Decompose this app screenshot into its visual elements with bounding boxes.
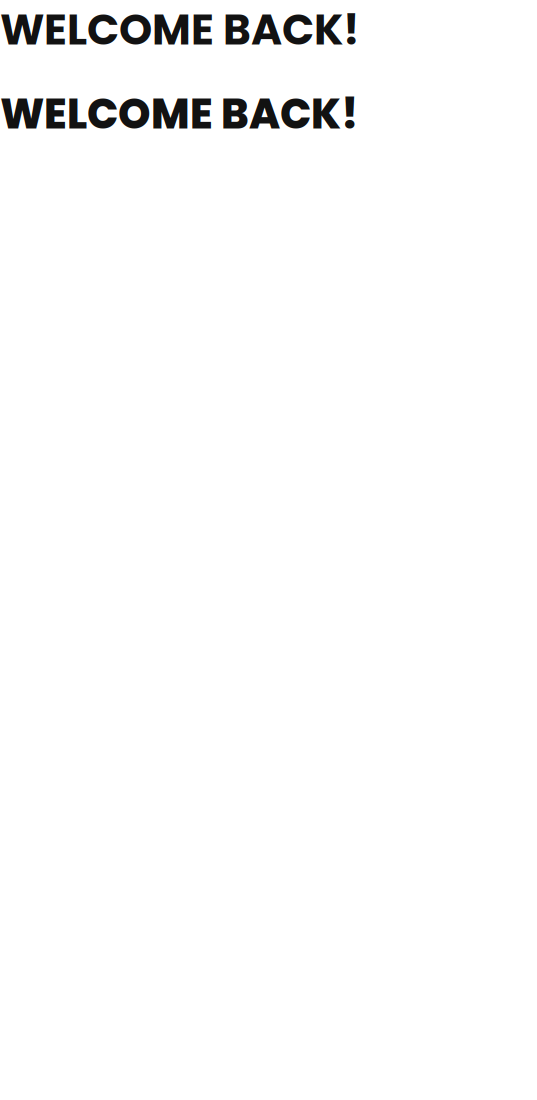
staticText: WELCOME BACK! bbox=[0, 85, 358, 143]
staticText: WELCOME BACK! bbox=[0, 0, 360, 59]
